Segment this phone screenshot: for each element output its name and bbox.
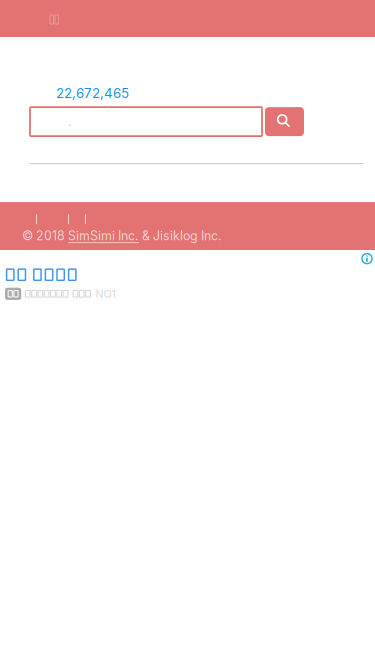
staticText: © 2018 — [22, 228, 68, 243]
staticText: 22,672,465 — [56, 85, 129, 101]
button[interactable]: SimSimi home — [0, 0, 70, 37]
button[interactable]: Search field — [30, 107, 262, 136]
staticText: SimSimi Inc. — [68, 228, 139, 243]
staticText: NO1 — [96, 287, 116, 300]
button[interactable]: Search — [265, 107, 304, 136]
button[interactable]: Advertisement headline — [0, 250, 76, 287]
button[interactable]: SimSimi Inc. — [68, 228, 139, 243]
staticText: . — [68, 114, 71, 129]
staticText: & Jisiklog Inc. — [139, 228, 222, 243]
button[interactable]: Ad information — [355, 250, 375, 270]
